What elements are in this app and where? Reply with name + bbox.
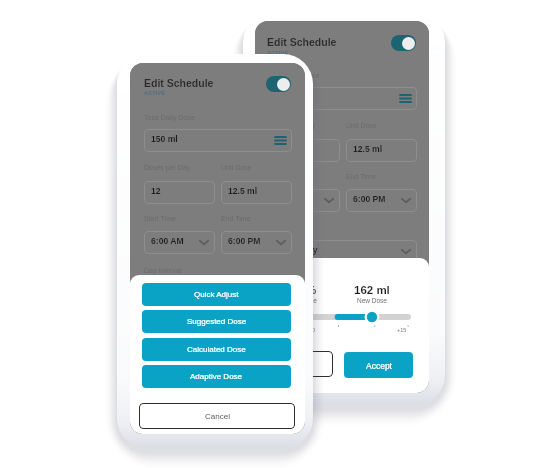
staticText: ACTIVE: [144, 90, 166, 96]
staticText: 12: [151, 186, 161, 196]
other: Dose slider: [266, 310, 411, 324]
staticText: 6:00 PM: [228, 236, 261, 246]
staticText: Unit Dose: [346, 122, 377, 130]
other: Expand: [401, 249, 411, 254]
staticText: 6:00 PM: [353, 194, 386, 204]
other: Menu: [275, 136, 286, 145]
staticText: 150 ml: [151, 134, 178, 144]
staticText: Unit Dose: [221, 164, 252, 172]
staticText: Edit Schedule: [144, 77, 214, 89]
other: Expand: [401, 198, 411, 203]
staticText: +8%: [293, 284, 317, 297]
staticText: Day Interval: [144, 267, 182, 275]
other: Menu: [400, 94, 411, 103]
staticText: +15: [397, 327, 407, 333]
button[interactable]: Quick Adjust: [142, 283, 291, 306]
button[interactable]: Adaptive Dose: [142, 365, 291, 388]
staticText: 162 ml: [354, 284, 390, 297]
staticText: Accept: [366, 361, 392, 370]
staticText: Calculated Dose: [187, 345, 246, 354]
staticText: Suggested Dose: [187, 317, 247, 326]
staticText: Total Daily Dose: [144, 114, 195, 122]
staticText: Change: [294, 297, 317, 304]
button[interactable]: Accept: [344, 352, 413, 378]
staticText: Day Interval: [269, 225, 307, 233]
other: Expand: [324, 198, 334, 203]
button[interactable]: 12.5 ml: [221, 181, 292, 204]
button[interactable]: 12.5 ml: [346, 139, 417, 162]
staticText: Total Daily Dose: [269, 72, 320, 80]
button[interactable]: Active toggle: [391, 35, 416, 51]
staticText: End Time: [221, 215, 251, 223]
staticText: Quick Adjust: [194, 290, 239, 299]
button[interactable]: Active toggle: [266, 76, 291, 92]
staticText: 6:00 AM: [276, 194, 309, 204]
staticText: Cancel: [205, 412, 230, 421]
staticText: 0: [312, 327, 316, 333]
button[interactable]: 6:00 PM: [346, 189, 417, 212]
button[interactable]: 150 ml: [144, 129, 292, 152]
button[interactable]: Cancel: [139, 403, 295, 429]
staticText: Edit Schedule: [267, 36, 337, 48]
staticText: 6:00 AM: [151, 236, 184, 246]
staticText: New Dose: [357, 297, 387, 304]
button[interactable]: Calculated Dose: [142, 338, 291, 361]
staticText: ACTIVE: [267, 50, 289, 56]
staticText: Start Time: [144, 215, 176, 223]
staticText: 12.5 ml: [228, 186, 258, 196]
button[interactable]: 6:00 AM: [269, 189, 340, 212]
staticText: 12: [276, 144, 286, 154]
staticText: 12.5 ml: [353, 144, 383, 154]
button[interactable]: Suggested Dose: [142, 310, 291, 333]
staticText: Doses per Day: [269, 122, 316, 130]
staticText: Adaptive Dose: [190, 372, 243, 381]
staticText: Every Day: [276, 245, 318, 255]
button[interactable]: 6:00 AM: [144, 231, 215, 254]
button[interactable]: Every Day: [269, 240, 417, 263]
button[interactable]: Cancel: [266, 351, 333, 377]
button[interactable]: 150 ml: [269, 87, 417, 110]
other: Expand: [199, 240, 209, 245]
staticText: End Time: [346, 173, 376, 181]
other: Expand: [276, 240, 286, 245]
button[interactable]: 6:00 PM: [221, 231, 292, 254]
staticText: Doses per Day: [144, 164, 191, 172]
button[interactable]: 12: [269, 139, 340, 162]
button[interactable]: 12: [144, 181, 215, 204]
staticText: Cancel: [286, 360, 313, 369]
